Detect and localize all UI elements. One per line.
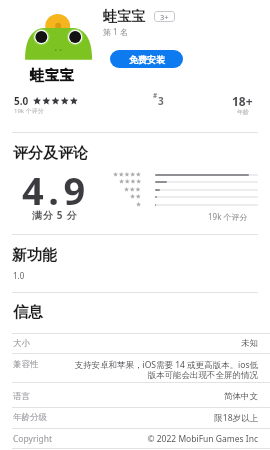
staticText: 5.0: [14, 94, 29, 108]
staticText: 新功能: [12, 246, 57, 265]
staticText: 免费安装: [129, 54, 165, 65]
staticText: 第 1 名: [103, 26, 128, 37]
staticText: 兼容性: [13, 359, 71, 370]
staticText: 3+: [160, 12, 169, 22]
staticText: 年龄分级: [13, 412, 71, 423]
staticText: © 2022 MobiFun Games Inc: [71, 433, 258, 445]
staticText: 蛙宝宝: [30, 67, 75, 85]
button[interactable]: 蛙宝宝: [10, 3, 95, 88]
button[interactable]: 语言: [0, 382, 270, 407]
staticText: 1.0: [13, 270, 25, 281]
staticText: 满分 5 分: [32, 208, 78, 222]
staticText: 19k 个评分: [14, 107, 44, 115]
staticText: 限18岁以上: [71, 412, 258, 424]
staticText: 支持安卓和苹果，iOS需要 14 或更高版本。ios低版本可能会出现不全屏的情况: [71, 359, 258, 381]
staticText: 3: [158, 94, 164, 108]
staticText: 18+: [232, 93, 253, 109]
staticText: 评分及评论: [13, 144, 88, 163]
staticText: 未知: [71, 338, 258, 349]
staticText: 语言: [13, 391, 71, 402]
staticText: 大小: [13, 338, 71, 349]
staticText: 蛙宝宝: [103, 8, 145, 26]
staticText: 信息: [13, 303, 43, 322]
button[interactable]: 兼容性: [0, 353, 270, 382]
button[interactable]: 年龄分级: [0, 407, 270, 428]
staticText: 19k 个评分: [208, 211, 248, 222]
staticText: Copyright: [13, 433, 71, 445]
button[interactable]: 免费安装: [110, 50, 183, 68]
staticText: 简体中文: [71, 391, 258, 402]
button[interactable]: Copyright: [0, 428, 270, 448]
staticText: 4.9: [22, 164, 90, 216]
staticText: 年龄: [237, 108, 249, 116]
button[interactable]: 3+: [154, 11, 175, 22]
staticText: #: [153, 91, 158, 100]
button[interactable]: 大小: [0, 333, 270, 353]
